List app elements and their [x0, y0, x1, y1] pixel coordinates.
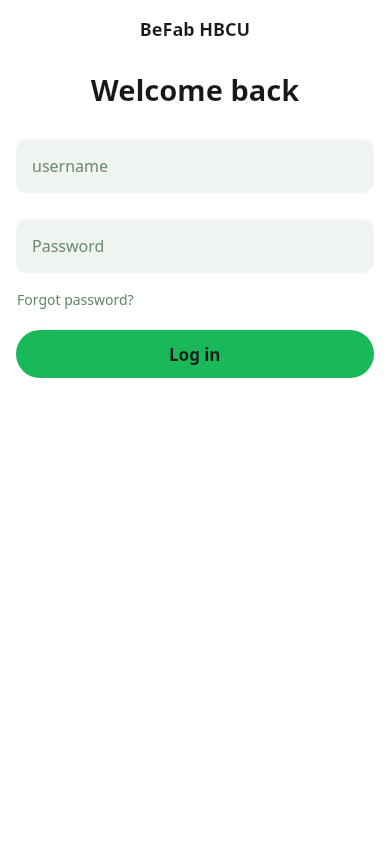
staticText: username	[32, 155, 109, 177]
staticText: Forgot password?	[17, 290, 134, 309]
staticText: Password	[32, 235, 105, 257]
staticText: Welcome back	[0, 70, 390, 109]
staticText: BeFab HBCU	[0, 17, 390, 42]
button[interactable]: Password	[16, 219, 374, 273]
button[interactable]: Forgot password?	[16, 288, 135, 311]
staticText: Log in	[169, 343, 221, 366]
button[interactable]: username	[16, 139, 374, 193]
button[interactable]: Log in	[16, 330, 374, 378]
